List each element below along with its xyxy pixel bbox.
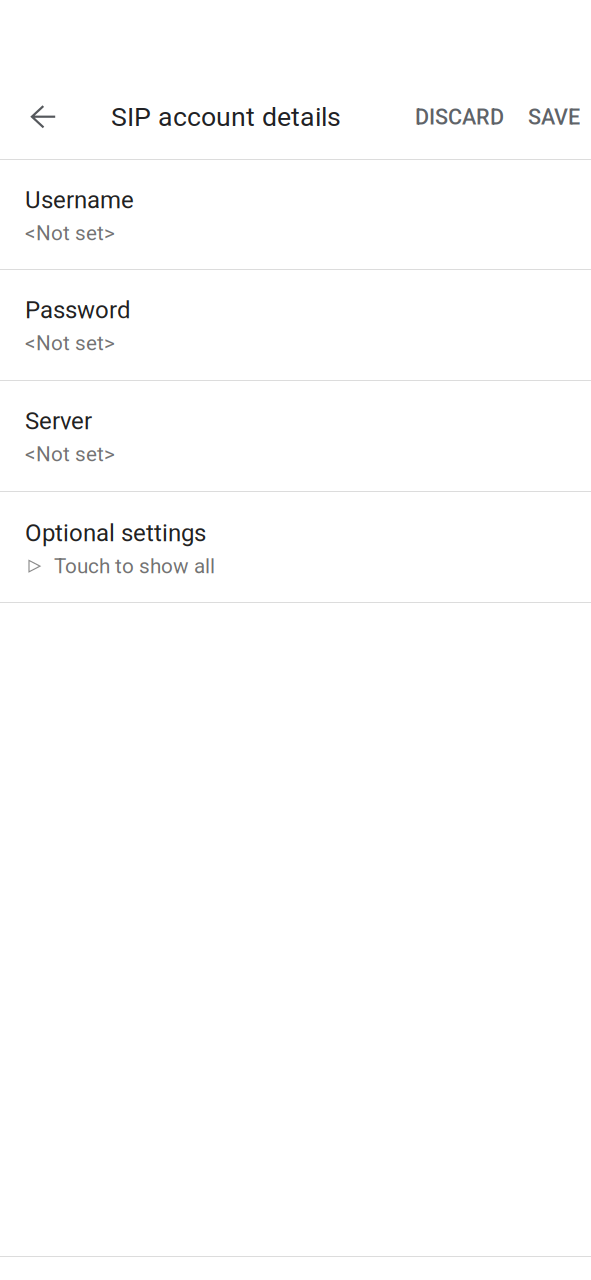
staticText: <Not set>	[25, 331, 115, 355]
button[interactable]: DISCARD	[403, 75, 516, 159]
staticText: <Not set>	[25, 221, 115, 245]
staticText: <Not set>	[25, 442, 115, 466]
staticText: Server	[25, 407, 92, 435]
staticText: Username	[25, 186, 134, 214]
staticText: Password	[25, 296, 131, 324]
button[interactable]: Password	[0, 270, 591, 380]
staticText: Touch to show all	[54, 554, 215, 578]
button[interactable]: Optional settings	[0, 492, 591, 602]
button[interactable]: Server	[0, 381, 591, 491]
button[interactable]: SAVE	[516, 75, 591, 159]
staticText: DISCARD	[415, 104, 504, 130]
button[interactable]: Navigate up	[0, 75, 111, 159]
staticText: Optional settings	[25, 519, 206, 547]
staticText: SIP account details	[111, 101, 341, 133]
staticText: SAVE	[528, 104, 580, 130]
button[interactable]: Username	[0, 160, 591, 269]
